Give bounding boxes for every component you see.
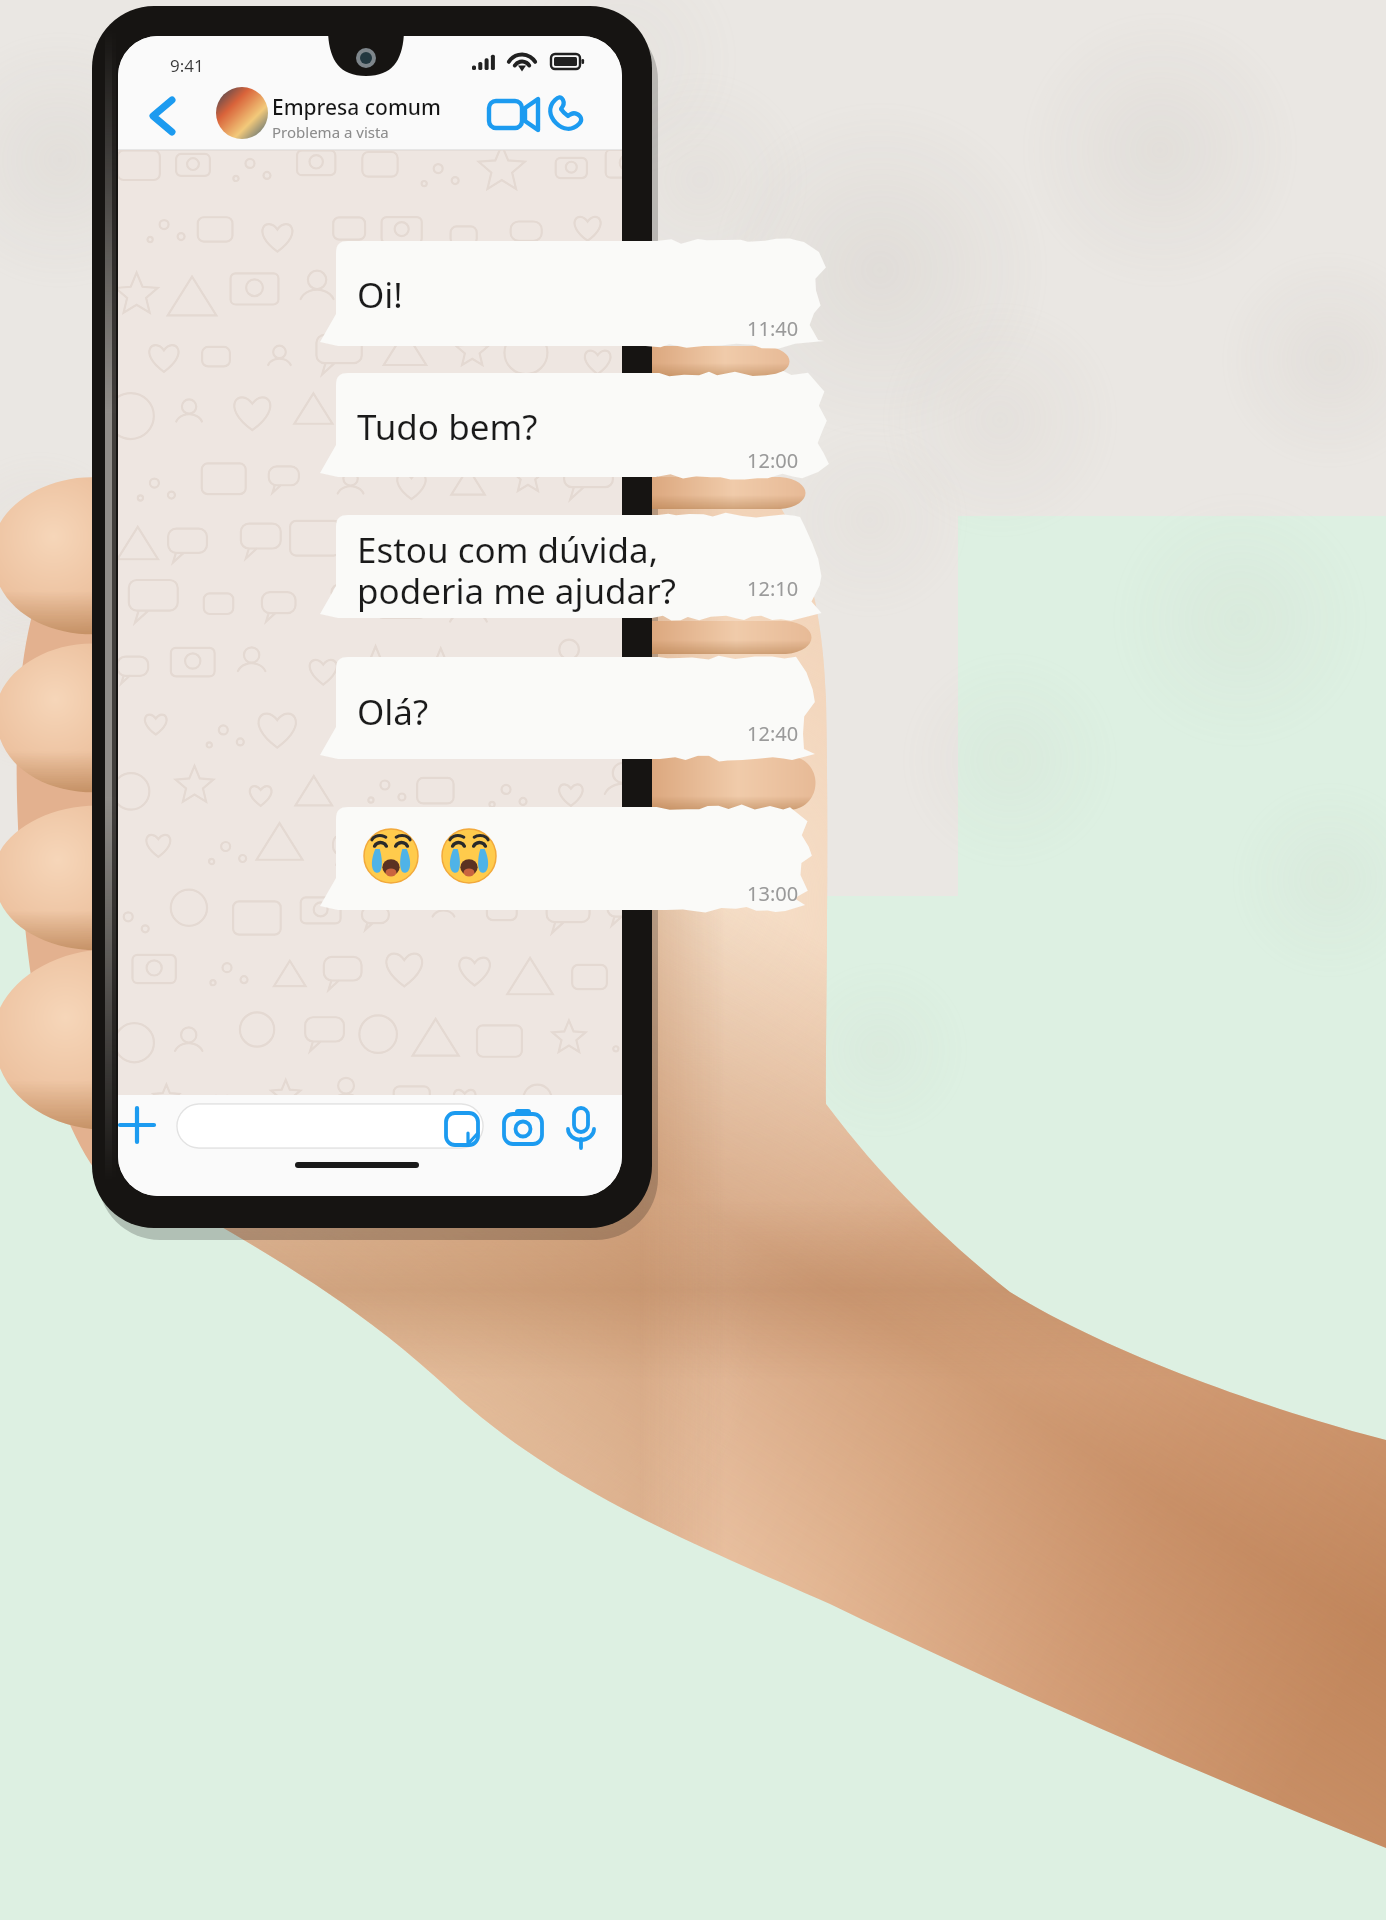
button[interactable]: Empresa comum xyxy=(272,93,441,142)
button[interactable]: Contact photo xyxy=(216,87,268,139)
staticText: 12:10 xyxy=(747,575,799,602)
staticText: Olá? xyxy=(357,688,429,736)
staticText: Empresa comum xyxy=(272,93,441,122)
button[interactable]: Camera xyxy=(499,1105,547,1153)
button[interactable]: Back xyxy=(140,92,190,140)
staticText: 11:40 xyxy=(747,315,799,342)
staticText: 12:40 xyxy=(747,720,799,747)
staticText: 9:41 xyxy=(170,54,204,77)
button[interactable]: Attach xyxy=(113,1101,161,1149)
staticText: Oi! xyxy=(357,271,403,319)
button[interactable]: Video call xyxy=(478,92,536,140)
staticText: Estou com dúvida, poderia me ajudar? xyxy=(357,526,676,614)
button[interactable]: Voice call xyxy=(542,92,594,140)
staticText: 13:00 xyxy=(747,880,799,907)
button[interactable]: Message input xyxy=(177,1104,483,1148)
button[interactable]: Voice message xyxy=(559,1103,603,1153)
staticText: Tudo bem? xyxy=(357,403,538,451)
staticText: Problema a vista xyxy=(272,122,389,142)
button[interactable]: Sticker xyxy=(440,1105,486,1153)
staticText: 12:00 xyxy=(747,447,799,474)
